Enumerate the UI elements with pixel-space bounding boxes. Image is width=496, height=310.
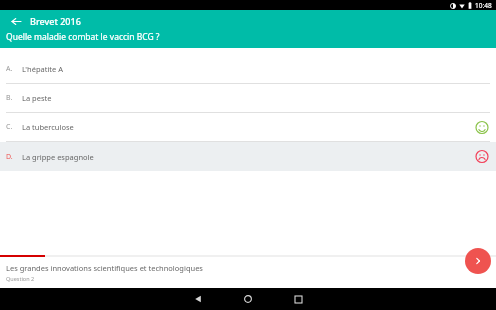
staticText: 10:48 [475,1,492,10]
staticText: Question 2 [6,275,35,282]
button[interactable]: B. [0,84,496,112]
staticText: L'hépatite A [22,64,64,74]
button[interactable]: Next question [465,248,491,274]
staticText: C. [6,122,22,132]
button[interactable]: Back [184,288,212,310]
button[interactable]: Home [234,288,262,310]
staticText: La peste [22,93,52,103]
button[interactable]: C. [0,113,496,141]
staticText: D. [6,152,22,162]
button[interactable]: Recents [284,288,312,310]
button[interactable]: A. [0,55,496,83]
staticText: A. [6,64,22,74]
staticText: Brevet 2016 [30,15,81,27]
button[interactable]: D. [0,142,496,171]
staticText: La tuberculose [22,122,74,132]
button[interactable]: Back [8,13,24,29]
staticText: Les grandes innovations scientifiques et… [6,263,203,273]
staticText: Quelle maladie combat le vaccin BCG ? [6,31,160,43]
staticText: La grippe espagnole [22,152,94,162]
staticText: B. [6,93,22,103]
